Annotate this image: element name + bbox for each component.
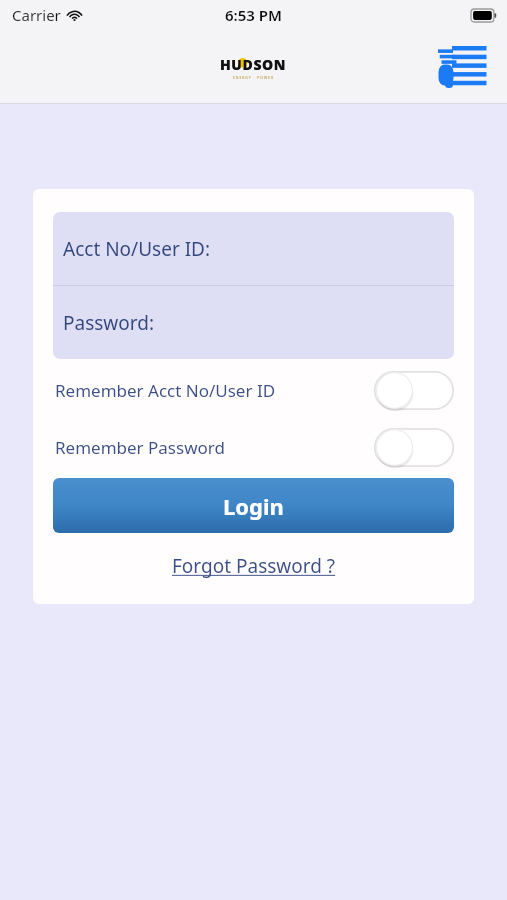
staticText: HUDSON xyxy=(220,55,287,74)
button[interactable]: Forgot Password ? xyxy=(166,551,342,581)
button[interactable]: Acct No/User ID: xyxy=(53,212,454,285)
button[interactable]: Remember Password xyxy=(53,428,454,467)
button[interactable]: Login xyxy=(53,478,454,533)
staticText: Acct No/User ID: xyxy=(63,236,211,262)
button[interactable]: Password: xyxy=(53,286,454,359)
staticText: HUDSON xyxy=(220,55,287,74)
staticText: 6:53 PM xyxy=(225,5,282,25)
staticText: Login xyxy=(223,491,284,521)
staticText: Carrier xyxy=(12,5,61,25)
staticText: Remember Acct No/User ID xyxy=(55,379,276,402)
button[interactable]: Menu xyxy=(433,44,491,90)
staticText: Forgot Password ? xyxy=(172,553,336,579)
staticText: Remember Password xyxy=(55,436,225,459)
staticText: E N E R G Y · P O W E R xyxy=(233,75,274,80)
staticText: Password: xyxy=(63,310,155,336)
button[interactable]: Remember Acct No/User ID xyxy=(53,371,454,410)
